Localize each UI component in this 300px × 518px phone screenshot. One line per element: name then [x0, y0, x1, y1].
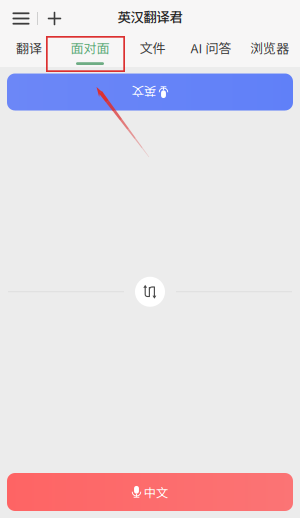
button[interactable]: AI 问答	[183, 33, 239, 67]
staticText: AI 问答	[190, 38, 231, 57]
button[interactable]: New conversation	[38, 2, 71, 35]
staticText: 面对面	[70, 38, 109, 57]
button[interactable]: 文件	[122, 33, 183, 67]
staticText: 文件	[139, 38, 165, 57]
staticText: 翻译	[16, 38, 42, 57]
button[interactable]: Swap languages	[135, 277, 165, 307]
button[interactable]: Menu	[5, 2, 37, 35]
button[interactable]: 面对面	[58, 33, 122, 67]
staticText: 英文	[144, 83, 168, 101]
button[interactable]: 翻译	[0, 33, 58, 67]
button[interactable]: 中文	[7, 473, 293, 511]
button[interactable]: 浏览器	[239, 33, 300, 67]
button[interactable]: 英文	[7, 73, 293, 110]
staticText: 英汉翻译君	[117, 7, 182, 26]
staticText: 中文	[144, 483, 168, 501]
staticText: 浏览器	[250, 38, 289, 57]
